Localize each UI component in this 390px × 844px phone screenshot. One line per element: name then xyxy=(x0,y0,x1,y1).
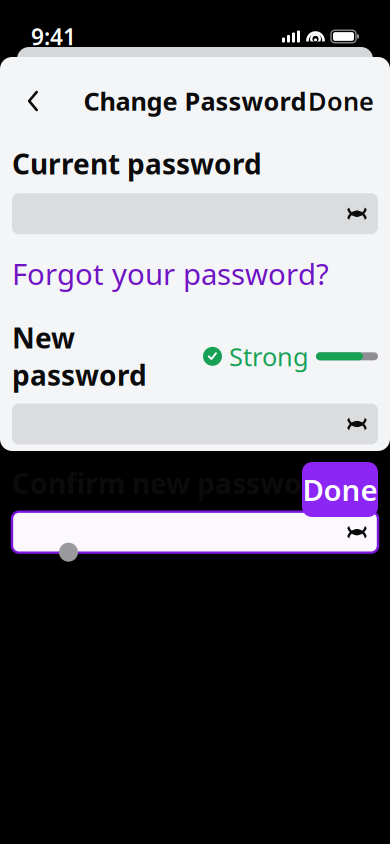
button[interactable]: Done xyxy=(308,81,374,121)
staticText: Forgot your password? xyxy=(12,254,329,293)
staticText: New password xyxy=(12,319,147,393)
staticText: Change Password xyxy=(83,84,306,118)
button[interactable]: Show password xyxy=(336,512,378,553)
button[interactable]: Forgot your password? xyxy=(12,250,329,297)
button[interactable]: Done xyxy=(302,462,378,517)
staticText: 9:41 xyxy=(31,21,76,51)
staticText: Strong xyxy=(229,339,309,373)
button[interactable]: Show password xyxy=(336,193,378,234)
button[interactable]: Show password xyxy=(336,403,378,444)
staticText: Current password xyxy=(12,145,262,182)
staticText: Done xyxy=(308,84,374,118)
button[interactable]: Back xyxy=(16,81,50,121)
staticText: Done xyxy=(302,470,377,509)
staticText: Confirm new password xyxy=(12,464,332,502)
